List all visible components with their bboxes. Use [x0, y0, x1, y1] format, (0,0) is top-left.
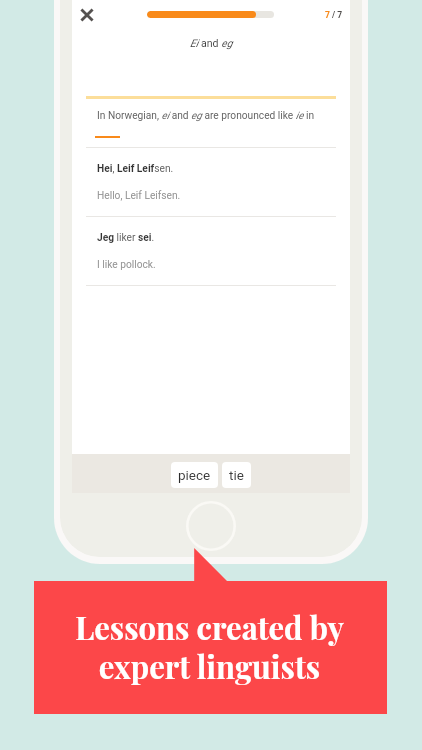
staticText: In Norwegian, ei and eg are pronounced l… — [97, 110, 315, 122]
staticText: piece — [178, 467, 211, 483]
button[interactable]: Home — [186, 501, 236, 551]
button[interactable]: Lessons created by expert linguists — [34, 581, 387, 714]
staticText: I like pollock. — [97, 259, 156, 271]
staticText: Hei, Leif Leifsen. — [97, 163, 174, 175]
staticText: tie — [229, 467, 244, 483]
button[interactable]: piece — [171, 462, 218, 488]
staticText: Hello, Leif Leifsen. — [97, 190, 181, 202]
button[interactable]: Close — [74, 2, 100, 28]
staticText: Lessons created by expert linguists — [75, 606, 344, 687]
staticText: Jeg liker sei. — [97, 232, 155, 244]
button[interactable]: tie — [222, 462, 251, 488]
staticText: Ei and eg — [190, 37, 233, 49]
staticText: 7 / 7 — [325, 10, 343, 20]
